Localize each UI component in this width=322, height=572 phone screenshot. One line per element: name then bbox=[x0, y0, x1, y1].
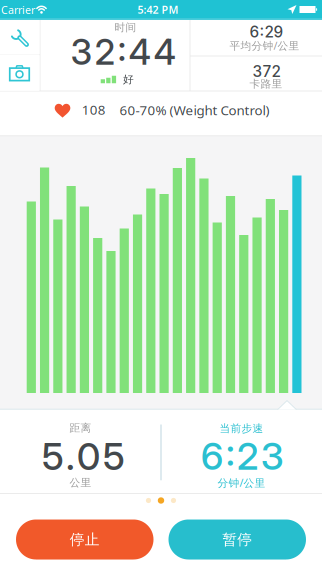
staticText: 好 bbox=[123, 73, 134, 86]
staticText: 当前步速 bbox=[219, 422, 263, 435]
button[interactable]: 停止 bbox=[16, 519, 153, 559]
staticText: 公里 bbox=[69, 476, 91, 489]
staticText: 108 bbox=[82, 101, 106, 118]
button[interactable]: 暂停 bbox=[168, 519, 306, 559]
staticText: 3 2 : 4 4 bbox=[70, 30, 176, 73]
staticText: Carrier bbox=[1, 3, 35, 17]
staticText: 372 bbox=[252, 62, 280, 81]
staticText: 6:29 bbox=[249, 22, 283, 41]
staticText: 平均分钟/公里 bbox=[229, 38, 299, 53]
staticText: 距离 bbox=[69, 421, 91, 434]
staticText: 60-70% (Weight Control) bbox=[119, 101, 269, 119]
staticText: 暂停 bbox=[222, 530, 252, 548]
button[interactable]: 当前步速 bbox=[161, 409, 322, 493]
staticText: 分钟/公里 bbox=[217, 476, 265, 490]
button[interactable] bbox=[0, 55, 39, 91]
staticText: 6 : 2 3 bbox=[201, 433, 284, 479]
staticText: 5 . 0 5 bbox=[42, 434, 125, 479]
staticText: 卡路里 bbox=[249, 77, 282, 90]
staticText: 时间 bbox=[114, 21, 136, 34]
staticText: 5:42 PM bbox=[137, 2, 178, 17]
button[interactable] bbox=[0, 20, 39, 54]
staticText: 停止 bbox=[70, 530, 100, 548]
